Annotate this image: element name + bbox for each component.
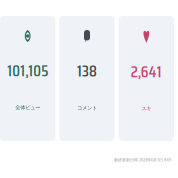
- staticText: 138: [77, 58, 97, 84]
- staticText: 最終更新日時 2023年6月1日 8:03: [114, 157, 171, 162]
- staticText: 全体ビュー: [15, 104, 40, 111]
- button[interactable]: 138: [59, 16, 115, 141]
- staticText: スキ: [141, 105, 151, 112]
- button[interactable]: 2,641: [119, 16, 174, 141]
- staticText: 101,105: [7, 58, 48, 83]
- button[interactable]: 101,105: [0, 16, 55, 141]
- staticText: 2,641: [131, 59, 162, 84]
- staticText: コメント: [77, 105, 97, 111]
